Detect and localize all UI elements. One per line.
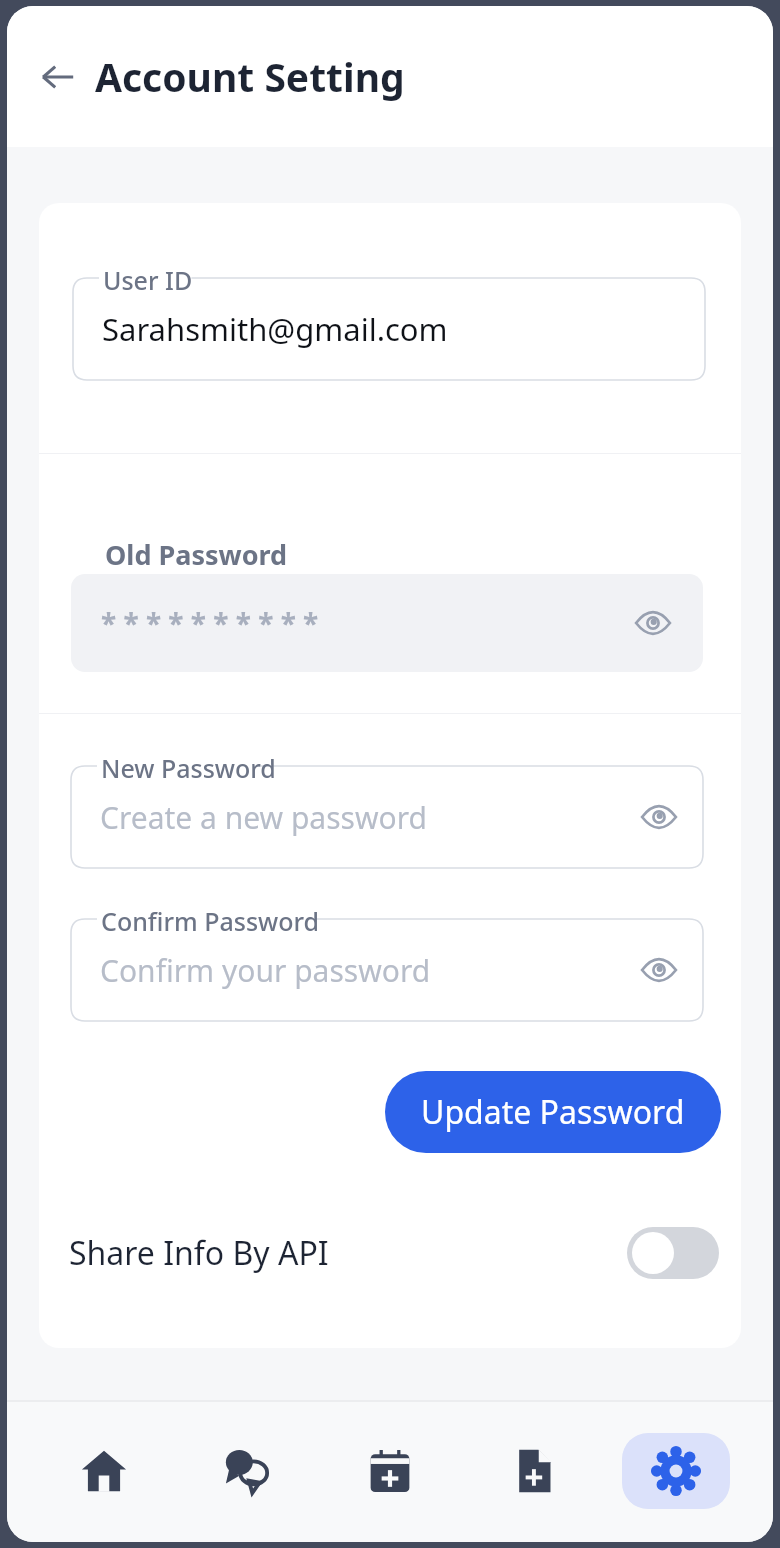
button[interactable]: Settings [622, 1433, 730, 1509]
button[interactable]: Home [50, 1433, 158, 1509]
button[interactable]: Back [31, 51, 83, 103]
button[interactable]: Create a new password [71, 766, 703, 868]
button[interactable]: * * * * * * * * * * [71, 574, 703, 672]
staticText: Sarahsmith@gmail.com [102, 308, 448, 350]
staticText: New Password [101, 751, 276, 785]
button[interactable]: Share Info By API [39, 1211, 741, 1295]
button[interactable]: Show Confirm Password [633, 944, 685, 996]
button[interactable]: Messages [193, 1433, 301, 1509]
button[interactable]: Confirm your password [71, 919, 703, 1021]
button[interactable]: Sarahsmith@gmail.com [73, 278, 705, 380]
staticText: Account Setting [95, 50, 405, 103]
button[interactable]: Documents [479, 1433, 587, 1509]
staticText: Update Password [421, 1090, 685, 1134]
staticText: Confirm Password [101, 904, 320, 938]
button[interactable]: Show New Password [633, 791, 685, 843]
button[interactable]: Update Password [385, 1071, 721, 1153]
staticText: Confirm your password [100, 950, 431, 991]
button[interactable]: Show old password [627, 597, 679, 649]
staticText: * * * * * * * * * * [101, 604, 319, 642]
button[interactable]: Share Info By API toggle [627, 1227, 719, 1279]
staticText: Old Password [105, 536, 288, 573]
staticText: Create a new password [100, 797, 427, 838]
staticText: Share Info By API [69, 1231, 329, 1275]
button[interactable]: Calendar [336, 1433, 444, 1509]
staticText: User ID [103, 263, 193, 297]
